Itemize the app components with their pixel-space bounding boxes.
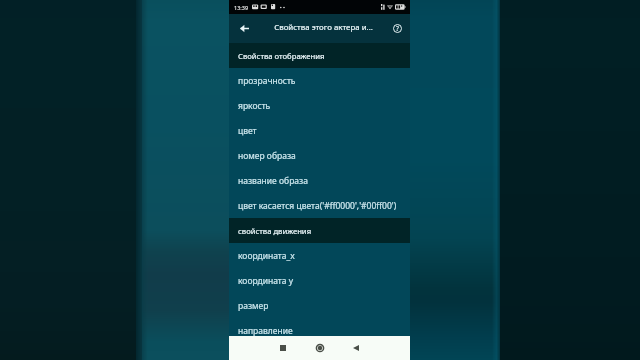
staticText: 13:39 — [234, 4, 249, 11]
button[interactable]: название образа — [229, 168, 410, 193]
button[interactable]: Back — [235, 19, 253, 37]
button[interactable]: номер образа — [229, 143, 410, 168]
button[interactable]: координата y — [229, 268, 410, 293]
staticText: Свойства отображения — [238, 51, 325, 61]
staticText: цвет касается цвета('#ff0000','#00ff00') — [238, 200, 397, 212]
button[interactable]: Home — [311, 339, 329, 357]
button[interactable]: прозрачность — [229, 68, 410, 93]
staticText: ? — [396, 24, 399, 33]
button[interactable]: цвет — [229, 118, 410, 143]
staticText: название образа — [238, 175, 308, 187]
staticText: прозрачность — [238, 75, 296, 87]
button[interactable]: координата_x — [229, 243, 410, 268]
staticText: цвет — [238, 125, 257, 137]
staticText: координата y — [238, 275, 294, 287]
button[interactable]: размер — [229, 293, 410, 318]
staticText: номер образа — [238, 150, 296, 162]
button[interactable]: направление — [229, 318, 410, 343]
button[interactable]: Help — [388, 19, 406, 37]
button[interactable]: свойства движения — [229, 218, 410, 243]
button[interactable]: цвет касается цвета('#ff0000','#00ff00') — [229, 193, 410, 218]
staticText: направление — [238, 325, 293, 337]
staticText: размер — [238, 300, 269, 312]
staticText: свойства движения — [238, 226, 312, 236]
staticText: яркость — [238, 100, 271, 112]
staticText: координата_x — [238, 250, 295, 262]
button[interactable]: Recent apps — [274, 339, 292, 357]
button[interactable]: Back — [347, 339, 365, 357]
button[interactable]: яркость — [229, 93, 410, 118]
staticText: Свойства этого актера и... — [274, 22, 373, 33]
button[interactable]: Свойства отображения — [229, 43, 410, 68]
